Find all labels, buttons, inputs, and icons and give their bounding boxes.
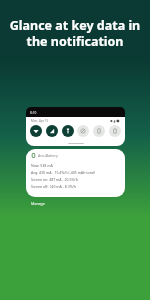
button[interactable]: AccuBattery xyxy=(26,149,125,197)
button[interactable]: Flashlight xyxy=(62,125,74,137)
button[interactable]: Battery saver xyxy=(109,125,121,137)
staticText: Glance at key data in the notification xyxy=(6,17,144,50)
staticText: Mon, Apr 15 xyxy=(31,119,49,123)
staticText: 8:10 xyxy=(30,111,37,115)
button[interactable]: Auto rotate xyxy=(93,125,105,137)
staticText: Now: 538 mA xyxy=(31,163,53,168)
staticText: Avg: 430 mA - 15.4%/h (-405 mAh total) xyxy=(31,170,95,175)
staticText: AccuBattery xyxy=(38,153,58,158)
button[interactable]: Manage xyxy=(26,201,125,206)
staticText: Screen off: 140 mA - 8.3%/h xyxy=(31,184,77,189)
staticText: Manage xyxy=(31,201,45,206)
button[interactable]: Do not disturb xyxy=(77,125,89,137)
button[interactable]: Mobile data xyxy=(46,125,58,137)
staticText: Screen on: 487 mA - 20.5%/h xyxy=(31,177,78,182)
button[interactable]: Wi-Fi xyxy=(30,125,42,137)
